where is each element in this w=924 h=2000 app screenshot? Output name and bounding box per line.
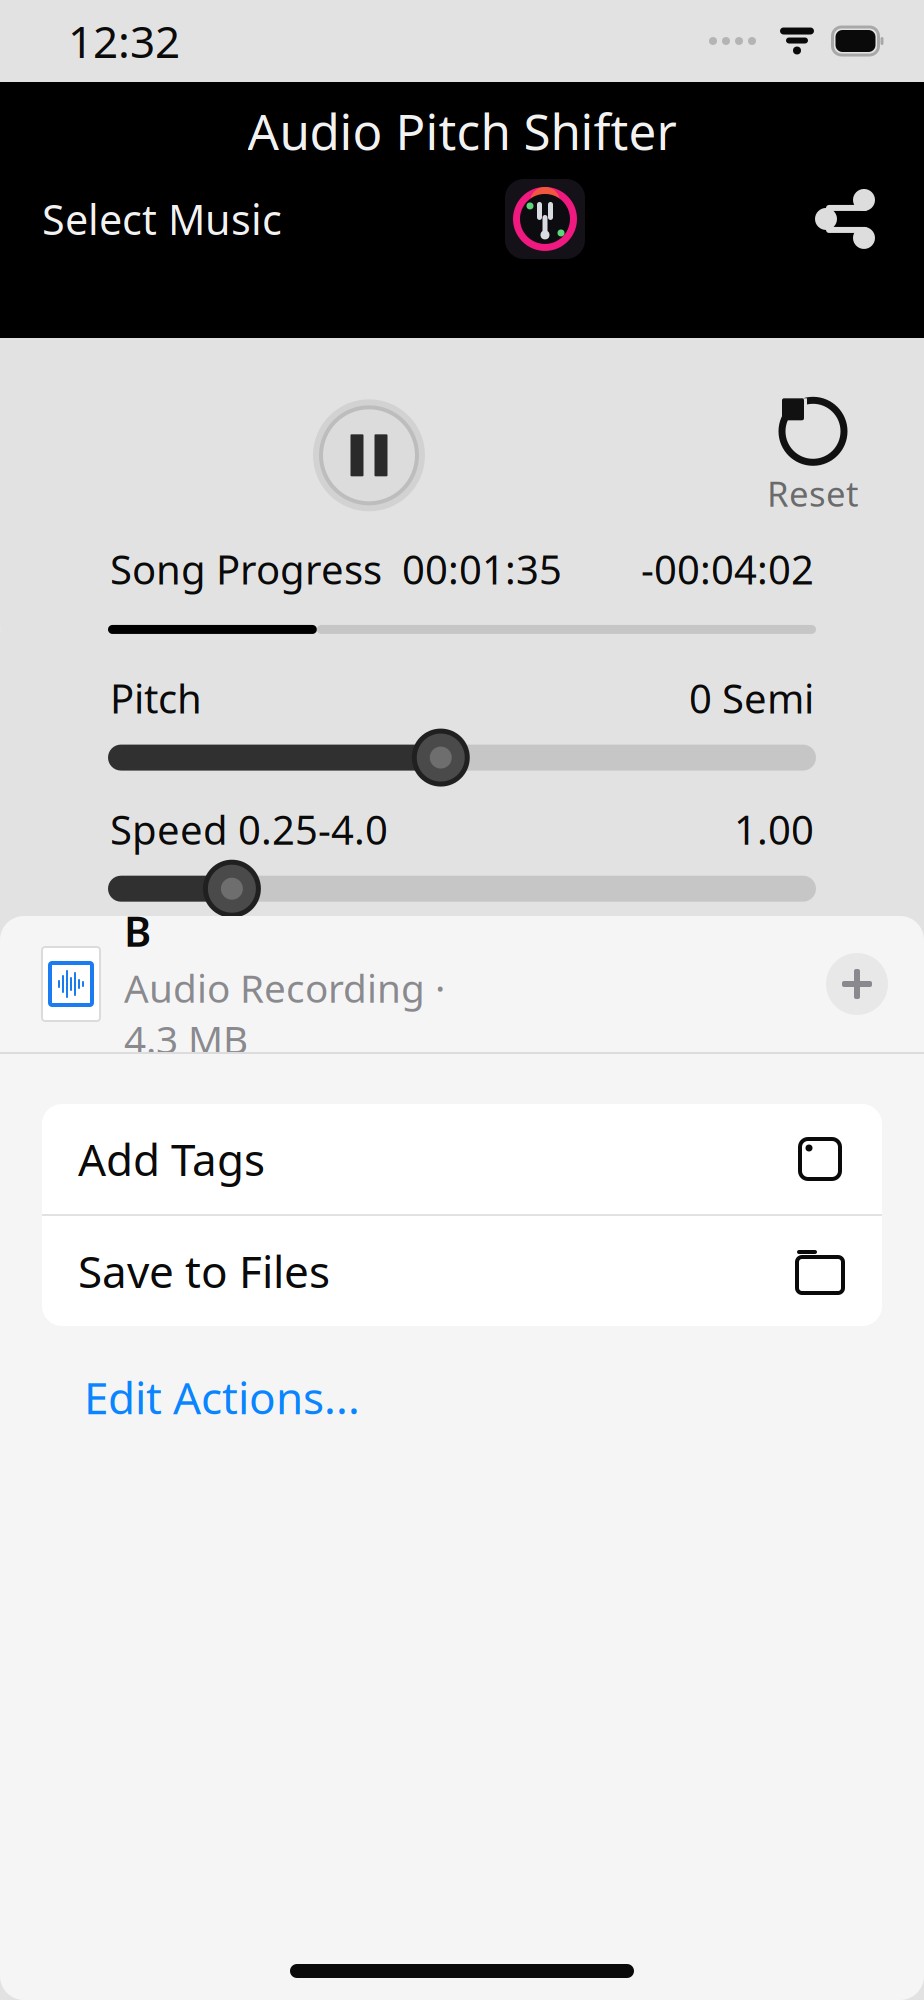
button[interactable]: Save to Files	[42, 1216, 882, 1326]
button[interactable]: Pause	[313, 399, 425, 511]
staticText: B	[124, 903, 151, 958]
staticText: Add Tags	[78, 1130, 265, 1188]
staticText: Audio Recording · 4.3 MB	[124, 962, 445, 1065]
staticText: Pitch	[110, 671, 202, 725]
button[interactable]: Reset	[738, 394, 888, 516]
staticText: Reset	[767, 470, 859, 516]
button[interactable]: Edit Actions...	[84, 1358, 360, 1436]
staticText: Edit Actions...	[84, 1368, 360, 1426]
staticText: Song Progress 00:01:35	[110, 542, 562, 595]
button[interactable]: Select Music	[0, 169, 282, 268]
button[interactable]: Add Tags	[42, 1104, 882, 1214]
staticText: 12:32	[68, 12, 180, 70]
staticText: -00:04:02	[641, 542, 814, 595]
staticText: 0 Semi	[689, 671, 814, 725]
button[interactable]: Close	[826, 953, 924, 1015]
staticText: Select Music	[42, 191, 282, 246]
staticText: 1.00	[734, 803, 814, 856]
staticText: Save to Files	[78, 1242, 330, 1300]
staticText: Audio Pitch Shifter	[247, 98, 676, 163]
button[interactable]: Share	[808, 182, 924, 256]
staticText: Speed 0.25-4.0	[110, 803, 388, 856]
